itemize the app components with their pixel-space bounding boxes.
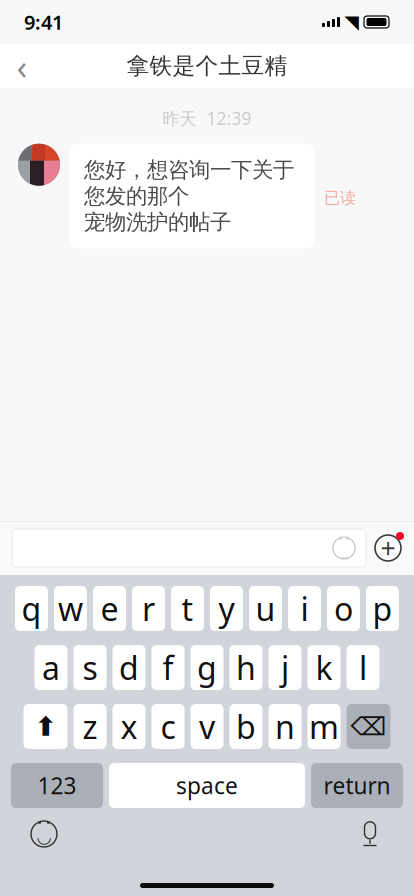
button[interactable]: Emoji keyboard — [22, 812, 66, 856]
staticText: z — [82, 705, 97, 748]
staticText: + — [380, 530, 395, 566]
button[interactable]: space — [109, 763, 305, 808]
button[interactable]: d — [112, 645, 145, 690]
button[interactable]: o — [327, 586, 360, 631]
button[interactable]: p — [366, 586, 399, 631]
button[interactable]: Back — [0, 44, 44, 88]
button[interactable]: m — [307, 704, 340, 749]
staticText: p — [372, 587, 392, 630]
button[interactable]: v — [190, 704, 223, 749]
staticText: return — [323, 770, 390, 800]
button[interactable]: w — [54, 586, 87, 631]
button[interactable]: Message input with emoji — [12, 529, 366, 567]
staticText: space — [176, 770, 238, 800]
button[interactable]: Shift — [23, 704, 67, 749]
staticText: q — [21, 587, 41, 630]
staticText: c — [160, 705, 175, 748]
button[interactable]: x — [112, 704, 145, 749]
staticText: o — [334, 587, 353, 630]
button[interactable]: c — [151, 704, 184, 749]
button[interactable]: 123 — [11, 763, 103, 808]
staticText: u — [255, 587, 275, 630]
button[interactable]: f — [151, 645, 184, 690]
button[interactable]: n — [268, 704, 301, 749]
staticText: t — [181, 587, 193, 630]
button[interactable]: j — [268, 645, 301, 690]
staticText: ⌫ — [350, 712, 386, 741]
button[interactable]: Delete — [346, 704, 390, 749]
staticText: g — [197, 646, 217, 689]
staticText: w — [58, 587, 83, 630]
staticText: ‿ — [340, 543, 347, 558]
staticText: f — [162, 646, 173, 689]
staticText: b — [236, 705, 256, 748]
staticText: r — [142, 587, 155, 630]
staticText: ◡ — [37, 827, 50, 847]
button[interactable]: a — [34, 645, 67, 690]
staticText: k — [315, 646, 332, 689]
button[interactable]: u — [249, 586, 282, 631]
staticText: 昨天 12:39 — [162, 107, 251, 130]
staticText: j — [281, 646, 289, 689]
button[interactable]: l — [346, 645, 379, 690]
button[interactable]: Dictation — [348, 812, 392, 856]
staticText: d — [119, 646, 139, 689]
staticText: ‹ — [16, 43, 27, 89]
button[interactable]: s — [73, 645, 106, 690]
button[interactable]: y — [210, 586, 243, 631]
staticText: 9:41 — [24, 9, 63, 35]
button[interactable]: t — [171, 586, 204, 631]
staticText: i — [300, 587, 308, 630]
button[interactable]: r — [132, 586, 165, 631]
staticText: e — [100, 587, 118, 630]
staticText: a — [42, 646, 60, 689]
button[interactable]: k — [307, 645, 340, 690]
staticText: 您好，想咨询一下关于您发的那个 宠物洗护的帖子 — [84, 157, 294, 235]
staticText: ⬆ — [34, 711, 56, 742]
staticText: ◥ — [344, 11, 358, 33]
button[interactable]: g — [190, 645, 223, 690]
button[interactable]: b — [229, 704, 262, 749]
staticText: s — [82, 646, 97, 689]
button[interactable]: q — [15, 586, 48, 631]
staticText: 已读 — [324, 188, 356, 208]
button[interactable]: i — [288, 586, 321, 631]
staticText: l — [359, 646, 367, 689]
button[interactable]: e — [93, 586, 126, 631]
staticText: h — [236, 646, 256, 689]
staticText: m — [309, 705, 339, 748]
staticText: x — [120, 705, 137, 748]
staticText: 拿铁是个土豆精 — [126, 52, 287, 80]
staticText: n — [275, 705, 295, 748]
button[interactable]: More options — [366, 526, 410, 570]
staticText: y — [218, 587, 234, 630]
staticText: v — [199, 705, 215, 748]
button[interactable]: h — [229, 645, 262, 690]
button[interactable]: z — [73, 704, 106, 749]
staticText: 123 — [37, 770, 76, 800]
button[interactable]: return — [311, 763, 403, 808]
